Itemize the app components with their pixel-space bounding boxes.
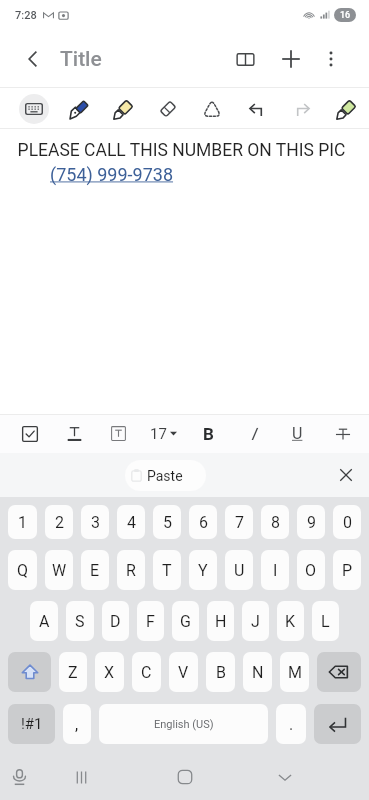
staticText: S <box>75 612 85 631</box>
staticText: R <box>126 561 136 580</box>
button[interactable]: F <box>137 601 164 641</box>
button[interactable]: Recents <box>66 762 96 792</box>
button[interactable]: . <box>276 704 306 744</box>
button[interactable]: , <box>63 704 91 744</box>
staticText: PLEASE CALL THIS NUMBER ON THIS PIC <box>0 140 366 161</box>
button[interactable]: G <box>172 601 199 641</box>
staticText: B <box>216 663 226 682</box>
button[interactable]: D <box>102 601 129 641</box>
button[interactable]: 2 <box>45 505 73 539</box>
button[interactable]: 7 <box>225 505 253 539</box>
staticText: 7 <box>235 513 244 532</box>
staticText: X <box>104 663 115 682</box>
button[interactable]: M <box>280 652 309 692</box>
button[interactable]: Text style <box>59 418 90 449</box>
button[interactable]: Y <box>189 550 217 590</box>
staticText: 8 <box>271 513 280 532</box>
button[interactable]: T <box>153 550 181 590</box>
staticText: 2 <box>55 513 64 532</box>
button[interactable]: 17 <box>148 418 179 449</box>
button[interactable]: Enter <box>314 704 361 744</box>
button[interactable]: R <box>117 550 145 590</box>
button[interactable]: Select <box>197 94 227 124</box>
staticText: G <box>180 612 191 631</box>
staticText: 16 <box>340 10 351 21</box>
button[interactable]: 3 <box>81 505 109 539</box>
button[interactable]: Voice input <box>4 762 34 792</box>
button[interactable]: P <box>333 550 361 590</box>
button[interactable]: Z <box>59 652 87 692</box>
button[interactable]: Italic <box>238 418 269 449</box>
button[interactable]: 0 <box>333 505 361 539</box>
staticText: Q <box>17 561 29 580</box>
button[interactable]: L <box>312 601 339 641</box>
button[interactable]: V <box>169 652 198 692</box>
button[interactable]: C <box>132 652 161 692</box>
staticText: U <box>234 561 245 580</box>
button[interactable]: Shift <box>8 652 51 692</box>
button[interactable]: H <box>207 601 234 641</box>
button[interactable]: Pen <box>64 94 94 124</box>
staticText: W <box>52 561 67 580</box>
button[interactable]: More options <box>313 41 349 77</box>
button[interactable]: Redo <box>286 94 316 124</box>
button[interactable]: 8 <box>261 505 289 539</box>
button[interactable]: Q <box>8 550 37 590</box>
button[interactable]: O <box>297 550 325 590</box>
button[interactable]: J <box>242 601 269 641</box>
button[interactable]: U <box>225 550 253 590</box>
staticText: Z <box>68 663 78 682</box>
button[interactable]: B <box>206 652 235 692</box>
button[interactable]: W <box>45 550 73 590</box>
staticText: T <box>162 561 172 580</box>
button[interactable]: Add <box>271 39 311 79</box>
button[interactable]: Undo <box>242 94 272 124</box>
button[interactable]: 9 <box>297 505 325 539</box>
button[interactable]: Marker <box>331 94 361 124</box>
button[interactable]: !#1 <box>8 704 55 744</box>
button[interactable]: Text box <box>103 418 134 449</box>
button[interactable]: Reading mode <box>225 39 265 79</box>
button[interactable]: Hide keyboard <box>270 762 300 792</box>
button[interactable]: Highlighter <box>108 94 138 124</box>
button[interactable]: Paste <box>125 460 206 491</box>
staticText: 17 <box>150 425 167 443</box>
button[interactable]: Eraser <box>153 94 183 124</box>
staticText: P <box>342 561 353 580</box>
button[interactable]: 5 <box>153 505 181 539</box>
button[interactable]: K <box>277 601 304 641</box>
button[interactable]: Back <box>15 41 51 77</box>
staticText: L <box>321 612 330 631</box>
staticText: !#1 <box>21 715 43 733</box>
button[interactable]: Underline <box>282 418 313 449</box>
button[interactable]: 6 <box>189 505 217 539</box>
button[interactable]: Strikethrough <box>327 418 358 449</box>
button[interactable]: S <box>66 601 94 641</box>
staticText: I <box>251 424 256 444</box>
button[interactable]: I <box>261 550 289 590</box>
button[interactable]: N <box>243 652 272 692</box>
button[interactable]: A <box>30 601 58 641</box>
button[interactable]: X <box>95 652 124 692</box>
staticText: O <box>305 561 317 580</box>
staticText: A <box>39 612 50 631</box>
button[interactable]: Bold <box>193 418 224 449</box>
staticText: . <box>289 715 294 734</box>
button[interactable]: Backspace <box>317 652 361 692</box>
staticText: English (US) <box>154 718 214 731</box>
staticText: K <box>285 612 296 631</box>
button[interactable]: 1 <box>8 505 37 539</box>
staticText: H <box>215 612 227 631</box>
staticText: , <box>75 715 79 734</box>
button[interactable]: Close <box>331 460 361 490</box>
staticText: Paste <box>147 468 183 484</box>
staticText: 7:28 <box>15 9 37 22</box>
button[interactable]: Keyboard <box>19 94 49 124</box>
button[interactable]: English (US) <box>99 704 268 744</box>
staticText: 1 <box>18 513 27 532</box>
button[interactable]: E <box>81 550 109 590</box>
button[interactable]: 4 <box>117 505 145 539</box>
button[interactable]: Home <box>170 762 200 792</box>
staticText: C <box>141 663 152 682</box>
button[interactable]: Checklist <box>14 418 45 449</box>
